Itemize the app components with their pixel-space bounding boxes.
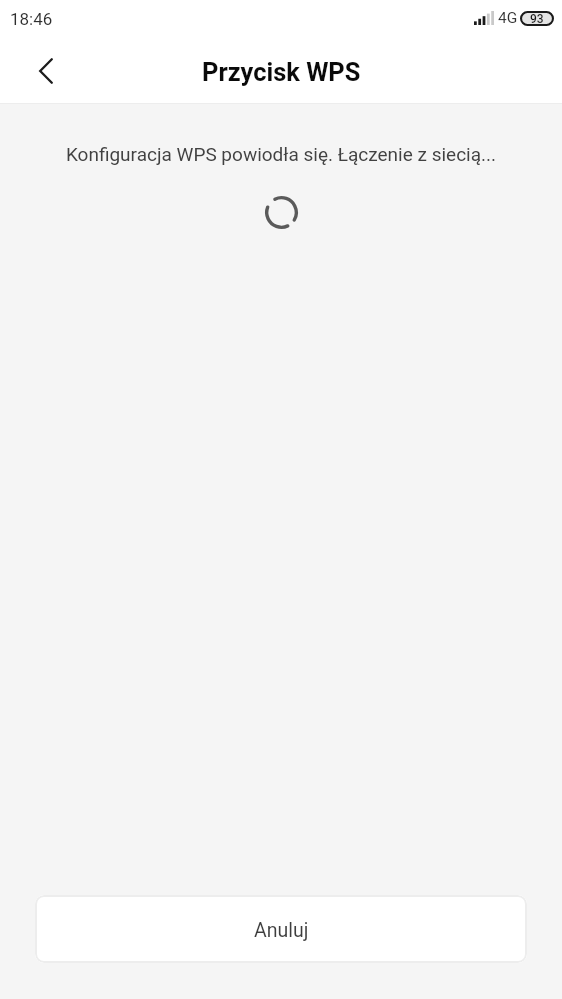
- staticText: 4G: [498, 9, 518, 27]
- staticText: Anuluj: [254, 919, 309, 942]
- button[interactable]: Back: [18, 43, 74, 99]
- button[interactable]: Anuluj: [35, 895, 527, 963]
- staticText: 18:46: [10, 9, 53, 29]
- staticText: Przycisk WPS: [202, 57, 361, 87]
- staticText: Konfiguracja WPS powiodła się. Łączenie …: [0, 143, 562, 165]
- staticText: 93: [530, 12, 544, 26]
